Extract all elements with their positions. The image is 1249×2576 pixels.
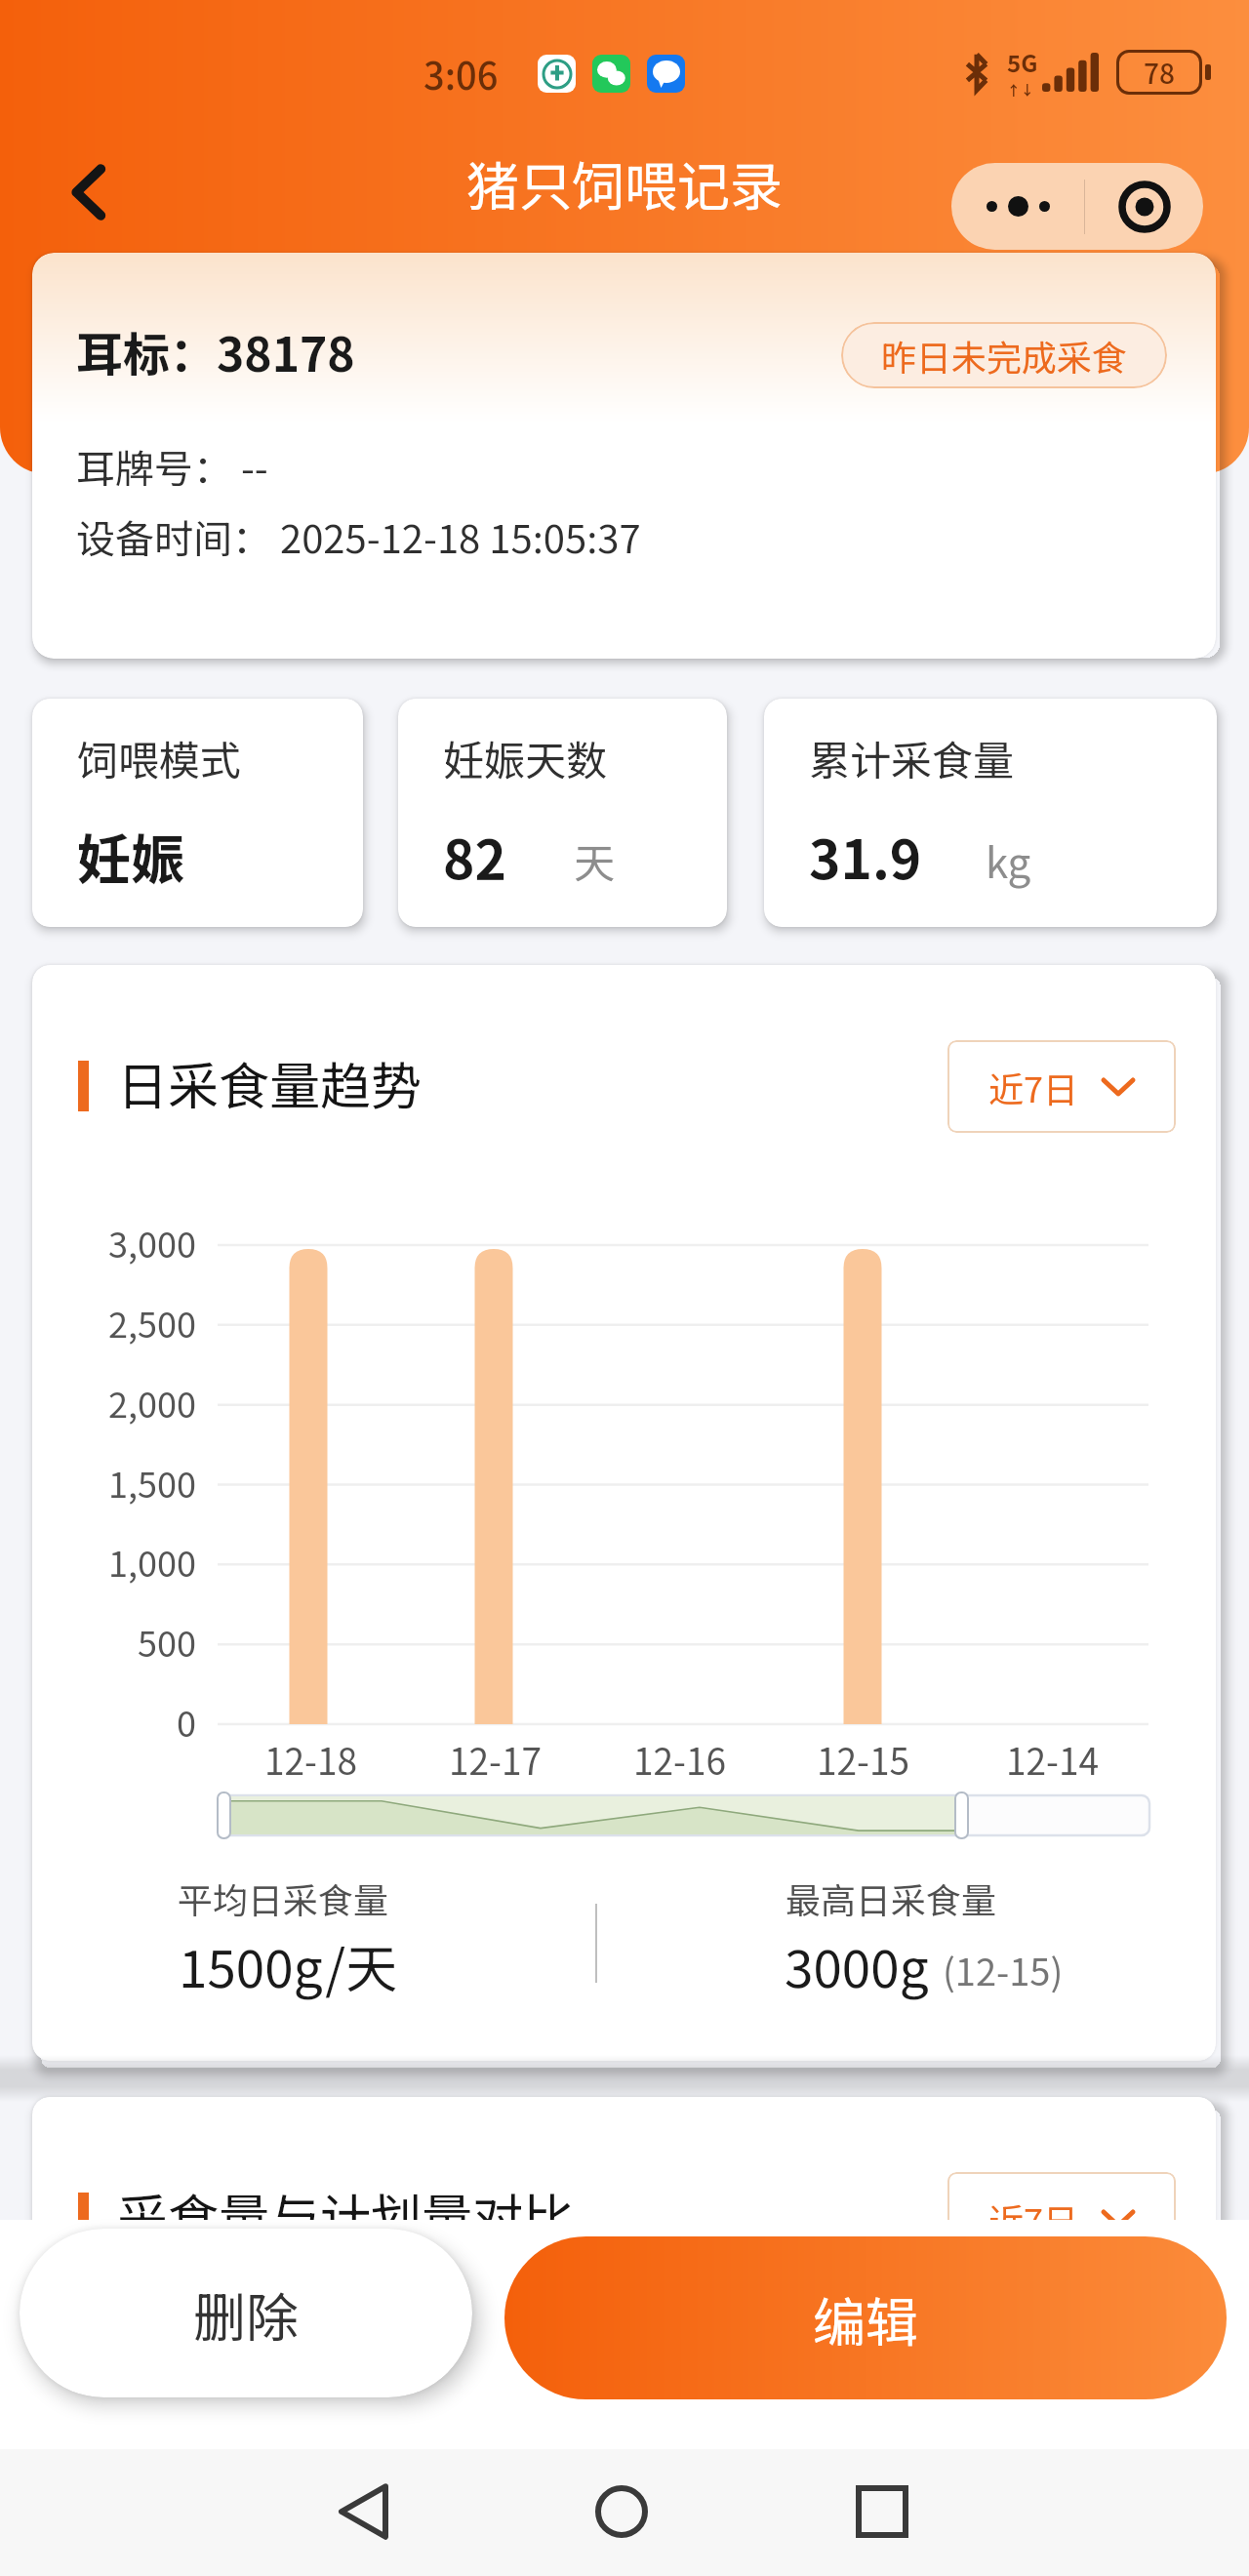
staticText: 猪只饲喂记录 — [466, 144, 783, 221]
staticText: 3,000 — [108, 1217, 196, 1268]
staticText: ↑↓ — [1007, 80, 1034, 100]
staticText: 累计采食量 — [809, 728, 1015, 787]
staticText: 耳标：38178 — [76, 317, 355, 385]
staticText: 0 — [177, 1696, 196, 1747]
staticText: 12-14 — [1006, 1733, 1099, 1786]
button[interactable]: 编辑 — [504, 2236, 1227, 2399]
staticText: 昨日未完成采食 — [881, 330, 1128, 381]
staticText: 1,000 — [108, 1536, 196, 1587]
button[interactable]: Home — [578, 2468, 665, 2556]
button[interactable]: 近7日 — [947, 1040, 1176, 1133]
button[interactable]: Back — [70, 166, 109, 219]
staticText: 31.9 — [809, 817, 922, 895]
staticText: 近7日 — [988, 1062, 1078, 1112]
staticText: kg — [986, 830, 1031, 890]
staticText: 12-17 — [449, 1733, 542, 1786]
staticText: 1,500 — [108, 1457, 196, 1508]
staticText: 78 — [1144, 53, 1175, 93]
staticText: 2,500 — [108, 1297, 196, 1348]
staticText: 饲喂模式 — [77, 728, 242, 787]
button[interactable]: More options — [951, 163, 1084, 250]
staticText: 采食量与计划量对比 — [117, 2178, 575, 2251]
staticText: 最高日采食量 — [786, 1872, 997, 1923]
staticText: 12-16 — [633, 1733, 726, 1786]
staticText: 天 — [574, 830, 616, 890]
staticText: 3000g — [785, 1928, 929, 2003]
staticText: 妊娠天数 — [443, 728, 608, 787]
staticText: 删除 — [193, 2275, 299, 2352]
staticText: 12-18 — [264, 1733, 357, 1786]
button[interactable]: Recent apps — [838, 2468, 926, 2556]
button[interactable]: 删除 — [20, 2229, 472, 2397]
button[interactable]: 近7日 — [947, 2172, 1176, 2265]
staticText: 500 — [138, 1616, 196, 1667]
staticText: 82 — [443, 817, 506, 895]
staticText: 12-15 — [817, 1733, 909, 1786]
button[interactable]: 妊娠天数 — [398, 699, 727, 927]
staticText: 妊娠 — [77, 817, 185, 895]
button[interactable]: 累计采食量 — [764, 699, 1217, 927]
staticText: 1500g/天 — [179, 1928, 398, 2003]
staticText: 耳牌号： -- — [76, 438, 268, 495]
staticText: 编辑 — [813, 2280, 918, 2356]
staticText: (12-15) — [943, 1943, 1064, 1996]
staticText: 近7日 — [988, 2194, 1078, 2244]
button[interactable]: Close mini program — [1085, 163, 1203, 250]
staticText: 日采食量趋势 — [117, 1046, 423, 1119]
button[interactable]: 昨日未完成采食 — [841, 322, 1167, 388]
staticText: 5G — [1007, 45, 1038, 79]
staticText: 设备时间： 2025-12-18 15:05:37 — [76, 508, 641, 565]
button[interactable]: 饲喂模式 — [32, 699, 363, 927]
staticText: 3:06 — [423, 47, 499, 101]
button[interactable]: Back — [319, 2468, 407, 2556]
staticText: 2,000 — [108, 1377, 196, 1428]
staticText: 平均日采食量 — [178, 1872, 389, 1923]
